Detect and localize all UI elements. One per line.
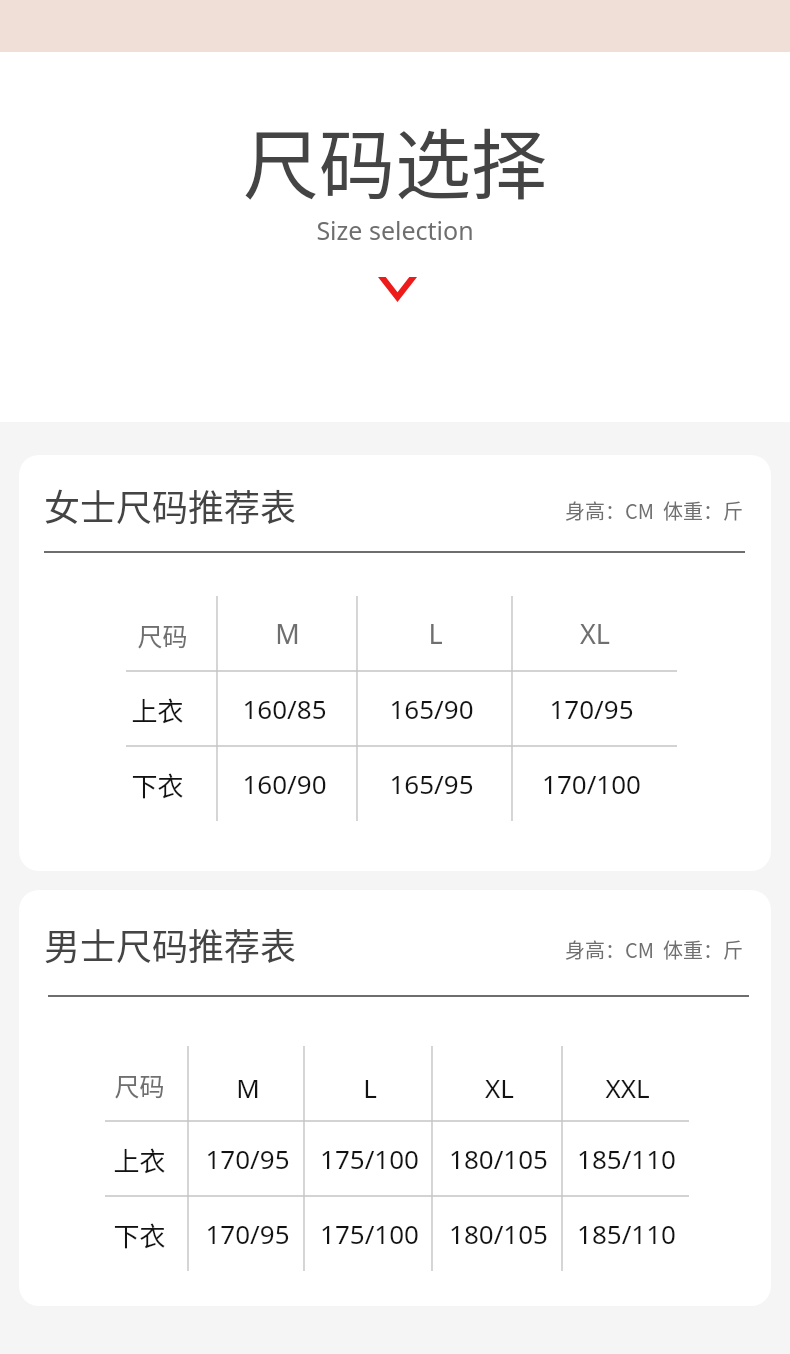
staticText: 160/90: [242, 766, 327, 801]
staticText: L: [363, 1070, 377, 1105]
staticText: 170/95: [549, 691, 634, 726]
staticText: 下衣: [113, 1216, 166, 1254]
staticText: M: [236, 1070, 260, 1105]
staticText: 尺码: [137, 617, 188, 653]
staticText: M: [275, 615, 300, 652]
staticText: 160/85: [242, 691, 327, 726]
staticText: 身高：CM 体重：斤: [565, 496, 743, 525]
staticText: 上衣: [131, 691, 184, 729]
staticText: 180/105: [449, 1141, 548, 1176]
staticText: 尺码: [114, 1067, 165, 1103]
staticText: 170/100: [542, 766, 641, 801]
staticText: 尺码选择: [243, 105, 547, 215]
staticText: XXL: [605, 1070, 650, 1105]
staticText: 175/100: [320, 1216, 419, 1251]
staticText: 185/110: [577, 1141, 676, 1176]
staticText: 165/95: [389, 766, 474, 801]
staticText: 身高：CM 体重：斤: [565, 935, 743, 964]
staticText: Size selection: [316, 213, 474, 247]
staticText: L: [428, 615, 443, 652]
staticText: 下衣: [131, 766, 184, 804]
button[interactable]: 女士尺码推荐表: [19, 455, 771, 871]
staticText: XL: [580, 615, 610, 652]
staticText: 165/90: [389, 691, 474, 726]
staticText: 上衣: [113, 1141, 166, 1179]
button[interactable]: 男士尺码推荐表: [19, 890, 771, 1306]
staticText: 170/95: [205, 1216, 290, 1251]
staticText: 女士尺码推荐表: [44, 479, 297, 531]
staticText: 185/110: [577, 1216, 676, 1251]
staticText: 男士尺码推荐表: [44, 918, 297, 970]
button[interactable]: Scroll down: [378, 277, 417, 302]
staticText: 170/95: [205, 1141, 290, 1176]
staticText: XL: [485, 1070, 514, 1105]
staticText: 175/100: [320, 1141, 419, 1176]
staticText: 180/105: [449, 1216, 548, 1251]
